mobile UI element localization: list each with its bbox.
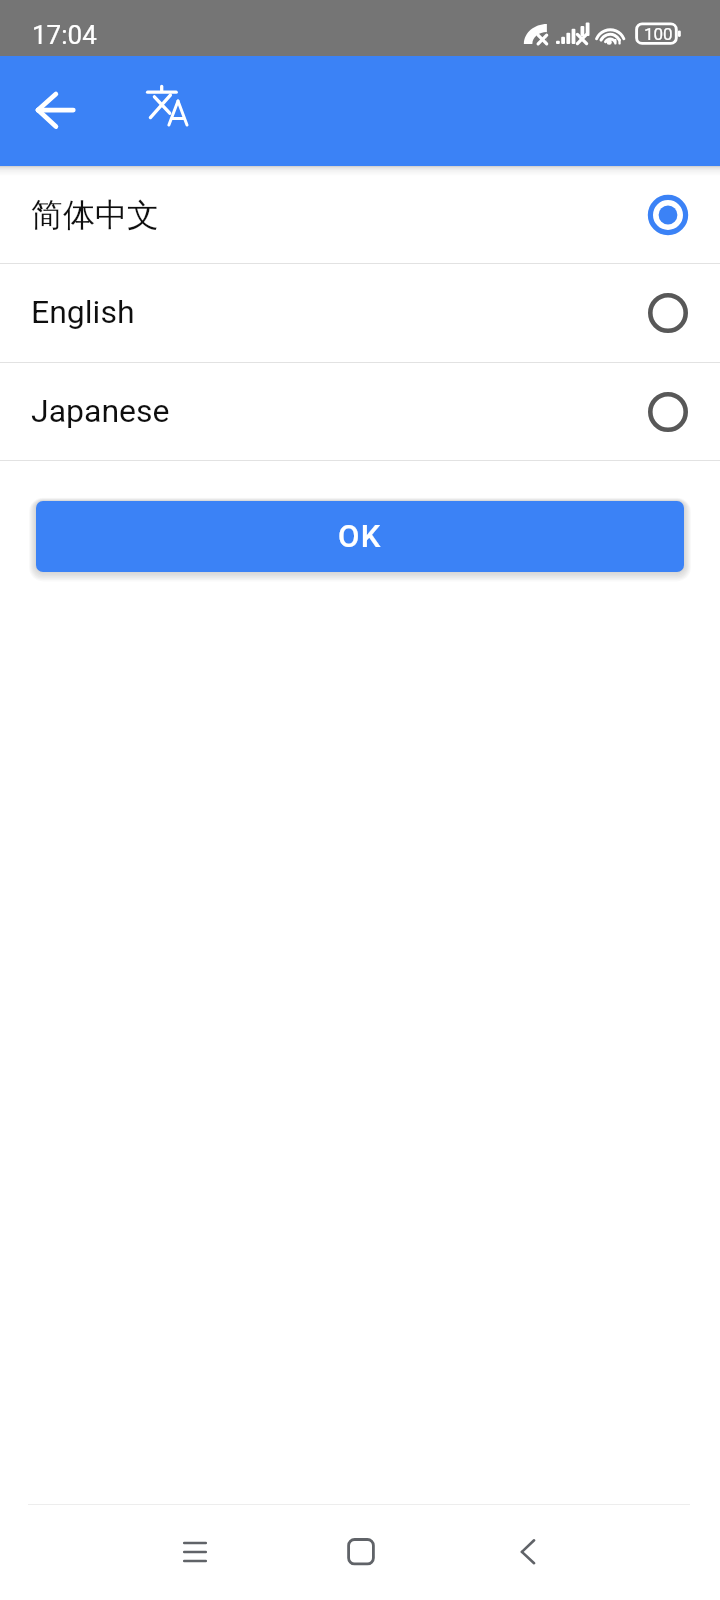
staticText: Japanese (31, 392, 170, 430)
staticText: OK (338, 518, 382, 554)
button[interactable]: OK (36, 501, 684, 572)
staticText: 17:04 (32, 20, 97, 50)
button[interactable]: Translate language (135, 79, 199, 143)
staticText: 简体中文 (31, 195, 159, 235)
button[interactable]: Back (23, 79, 87, 143)
button[interactable]: Back (496, 1503, 560, 1567)
button[interactable]: 简体中文 (0, 166, 720, 263)
button[interactable]: Japanese (0, 363, 720, 460)
staticText: English (31, 293, 135, 331)
button[interactable]: Recent apps (163, 1503, 227, 1567)
button[interactable]: English (0, 264, 720, 362)
button[interactable]: Home (329, 1503, 393, 1567)
staticText: 100 (644, 24, 673, 44)
